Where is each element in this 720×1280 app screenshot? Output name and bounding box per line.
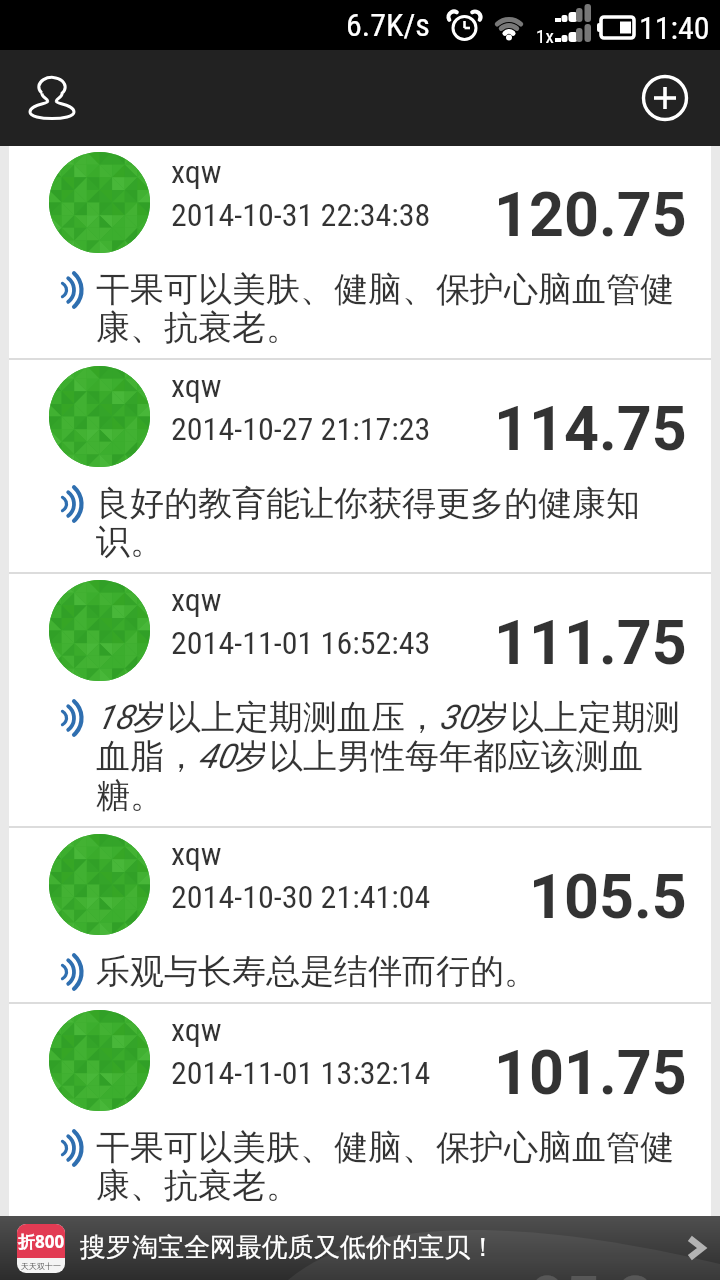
staticText: 101.75 <box>494 1037 687 1108</box>
button[interactable]: xqw <box>9 360 711 572</box>
button[interactable]: Open ad <box>674 1226 718 1270</box>
staticText: 天天双十一 <box>21 1261 61 1271</box>
staticText: 2014-10-27 21:17:23 <box>171 410 431 448</box>
staticText: 乐观与长寿总是结伴而行的。 <box>96 950 538 993</box>
staticText: 良好的教育能让你获得更多的健康知识。 <box>96 482 684 563</box>
staticText: xqw <box>171 153 222 191</box>
staticText: 折800 <box>18 1230 65 1253</box>
staticText: xqw <box>171 367 222 405</box>
button[interactable]: xqw <box>9 574 711 826</box>
staticText: 11:40 <box>639 9 710 47</box>
button[interactable]: xqw <box>9 146 711 358</box>
staticText: xqw <box>171 581 222 619</box>
staticText: 干果可以美肤、健脑、保护心脑血管健康、抗衰老。 <box>96 1126 684 1207</box>
staticText: 2014-10-31 22:34:38 <box>171 196 431 234</box>
button[interactable]: xqw <box>9 1004 711 1216</box>
staticText: 105.5 <box>529 861 687 932</box>
button[interactable]: xqw <box>9 1218 711 1280</box>
staticText: xqw <box>171 1225 222 1263</box>
staticText: 114.75 <box>494 393 687 464</box>
staticText: 120.75 <box>494 179 687 250</box>
button[interactable]: xqw <box>9 828 711 1002</box>
button[interactable]: Profile <box>14 60 90 136</box>
staticText: 95.2 <box>564 1251 687 1280</box>
button[interactable]: 折800 <box>0 1216 720 1280</box>
staticText: 2014-10-30 21:41:04 <box>171 878 431 916</box>
staticText: 1x <box>536 25 554 47</box>
button[interactable]: Add <box>641 74 689 122</box>
staticText: 2014-11-02 09:12:02 <box>171 1268 431 1280</box>
staticText: 搜罗淘宝全网最优质又低价的宝贝！ <box>80 1231 496 1264</box>
staticText: 2014-11-01 16:52:43 <box>171 624 431 662</box>
staticText: 111.75 <box>494 607 687 678</box>
staticText: xqw <box>171 1011 222 1049</box>
staticText: xqw <box>171 835 222 873</box>
staticText: 95.2 <box>530 1263 653 1280</box>
staticText: 18岁以上定期测血压，30岁以上定期测血脂，40岁以上男性每年都应该测血糖。 <box>96 696 684 817</box>
staticText: 干果可以美肤、健脑、保护心脑血管健康、抗衰老。 <box>96 268 684 349</box>
staticText: 6.7K/s <box>346 6 430 44</box>
staticText: 2014-11-01 13:32:14 <box>171 1054 431 1092</box>
